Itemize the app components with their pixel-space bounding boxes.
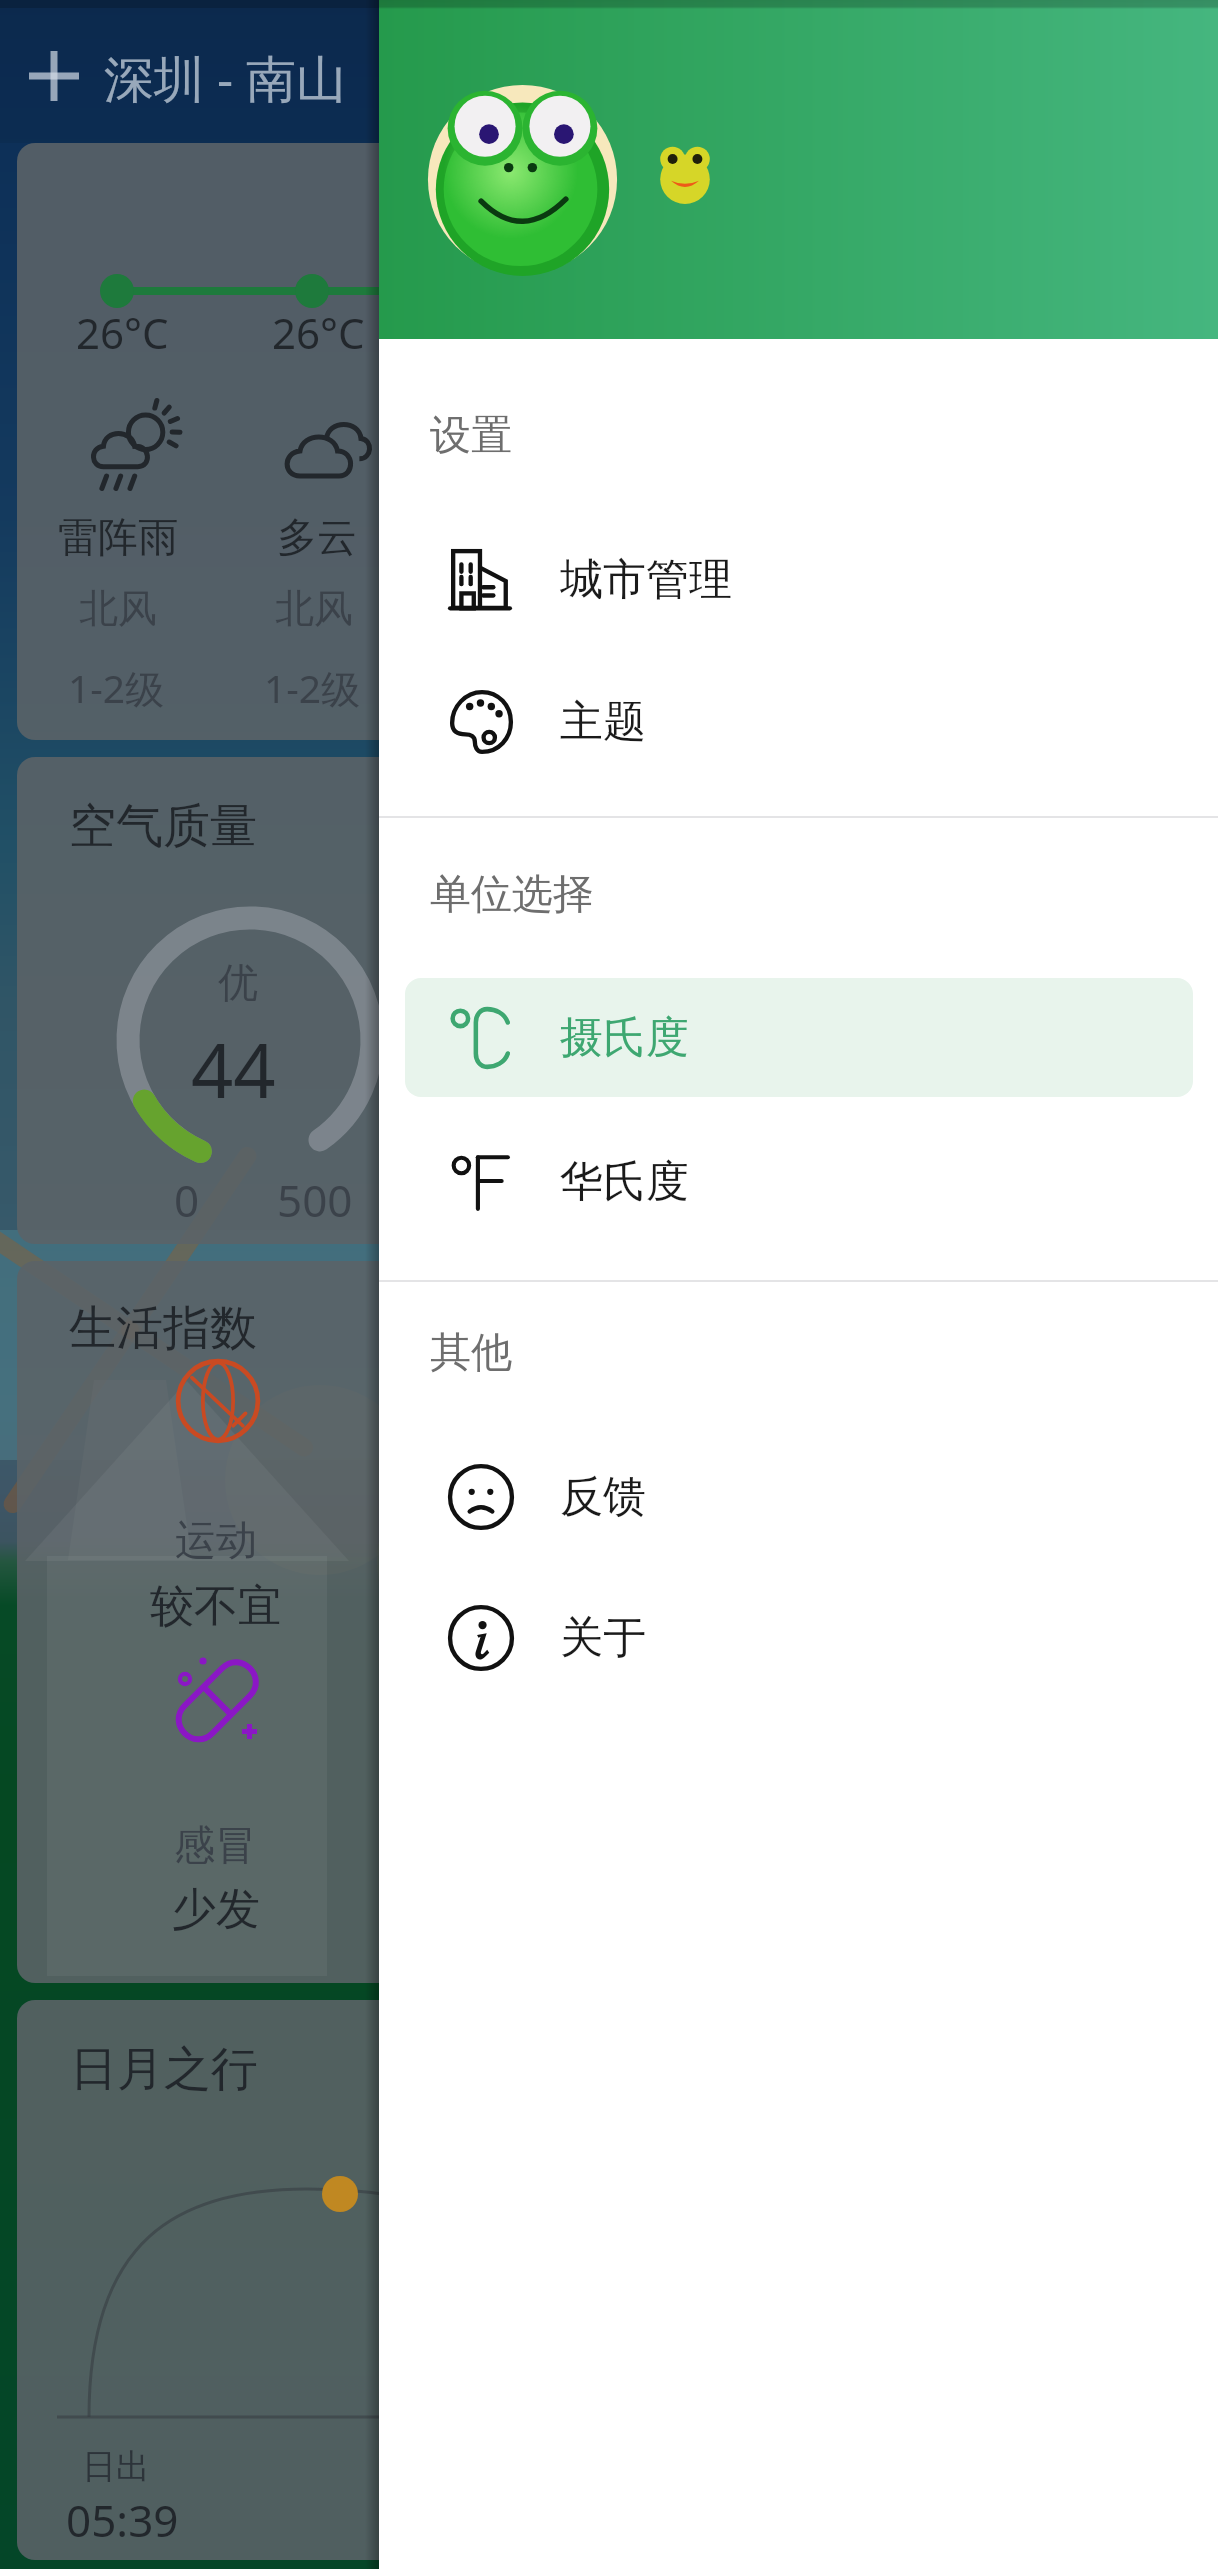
staticText: 北风	[79, 584, 157, 633]
button[interactable]: 深圳 - 南山	[92, 36, 359, 116]
staticText: 44	[191, 1019, 276, 1120]
staticText: 1-2级	[68, 661, 165, 714]
staticText: 500	[277, 1170, 353, 1230]
other: About	[448, 1605, 514, 1671]
other: Theme	[448, 689, 514, 755]
other: Celsius	[448, 1005, 514, 1071]
other: Fahrenheit	[448, 1149, 514, 1215]
staticText: 单位选择	[430, 869, 594, 921]
staticText: 运动	[175, 1515, 257, 1567]
staticText: 摄氏度	[560, 1011, 689, 1065]
staticText: 05:39	[66, 2490, 179, 2550]
staticText: 华氏度	[560, 1155, 689, 1209]
staticText: 日出	[82, 2445, 150, 2488]
button[interactable]: Fahrenheit	[405, 1122, 1193, 1241]
staticText: 26°C	[272, 304, 365, 361]
staticText: 北风	[275, 584, 353, 633]
staticText: 多云	[277, 512, 357, 562]
staticText: 主题	[560, 695, 646, 749]
staticText: 生活指数	[69, 1299, 257, 1358]
button[interactable]: City management	[379, 509, 1218, 651]
staticText: 反馈	[560, 1470, 646, 1524]
other: Feedback	[448, 1464, 514, 1530]
staticText: 深圳 - 南山	[104, 44, 347, 108]
staticText: 较不宜	[150, 1579, 282, 1634]
staticText: 日月之行	[70, 2040, 258, 2099]
staticText: 设置	[430, 410, 512, 462]
staticText: 关于	[560, 1611, 646, 1665]
button[interactable]: Add city	[16, 38, 92, 114]
staticText: 城市管理	[560, 553, 732, 607]
staticText: 26°C	[76, 304, 169, 361]
staticText: 雷阵雨	[58, 512, 178, 562]
button[interactable]: About	[379, 1567, 1218, 1709]
button[interactable]: Theme	[379, 651, 1218, 793]
staticText: 少发	[172, 1882, 260, 1937]
staticText: 0	[174, 1170, 200, 1230]
button[interactable]: Feedback	[379, 1426, 1218, 1568]
staticText: 空气质量	[69, 797, 257, 856]
staticText: 优	[218, 957, 258, 1007]
staticText: 1-2级	[264, 661, 361, 714]
other: City management	[448, 547, 514, 613]
button[interactable]: Celsius	[405, 978, 1193, 1097]
staticText: 感冒	[174, 1820, 256, 1872]
staticText: 其他	[430, 1327, 512, 1379]
